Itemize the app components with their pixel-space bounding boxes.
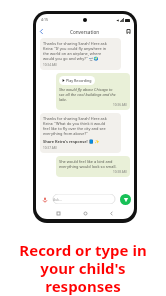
button[interactable]: Record [39, 194, 50, 205]
staticText: Thanks for sharing Sarah! Here ask Keira… [43, 41, 107, 61]
staticText: Conversation [70, 29, 100, 35]
button[interactable]: Thanks for sharing Sarah! Here ask Keira… [40, 38, 121, 70]
staticText: She would feel like a bird and everythin… [59, 159, 117, 169]
button[interactable]: Ask… [50, 194, 118, 204]
staticText: 10:38 AM [113, 170, 127, 174]
button[interactable]: Home [81, 209, 90, 218]
staticText: 10:37 AM [43, 146, 57, 150]
staticText: Record or type in your child's responses [19, 240, 147, 296]
staticText: 10:36 AM [113, 103, 127, 107]
staticText: 4:15 [41, 17, 48, 22]
staticText: Thanks for sharing Sarah! Here ask Keira… [43, 116, 107, 136]
staticText: 10:34 AM [43, 63, 57, 67]
button[interactable]: Send [120, 194, 131, 205]
staticText: Play Recording [66, 78, 92, 83]
button[interactable]: Back [107, 209, 116, 218]
button[interactable]: Thanks for sharing Sarah! Here ask Keira… [40, 113, 121, 153]
button[interactable]: Recents [54, 209, 63, 218]
button[interactable]: She would feel like a bird and everythin… [56, 156, 130, 177]
staticText: Share Keira's response! 📘 ✨ [43, 139, 100, 144]
staticText: Ask… [53, 197, 62, 202]
staticText: She would fly above Chicago to see all t… [59, 87, 116, 102]
button[interactable]: Play Recording [59, 76, 95, 85]
button[interactable]: Back [36, 26, 47, 37]
button[interactable]: Play Recording [56, 73, 130, 110]
button[interactable]: Bookmark [123, 26, 134, 37]
